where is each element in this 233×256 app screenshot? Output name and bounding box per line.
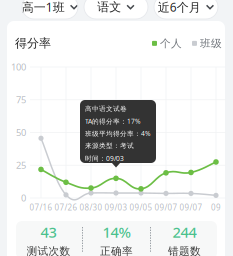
staticText: 08/30 (79, 202, 102, 213)
staticText: 高一1班 (22, 0, 65, 15)
button[interactable]: 244 (151, 222, 218, 256)
staticText: 语文 (97, 0, 121, 14)
staticText: 09/07 (154, 202, 177, 213)
staticText: 09/03 (104, 202, 127, 213)
staticText: 测试次数 (26, 245, 70, 256)
staticText: 班级平均得分率：4% (85, 129, 151, 138)
staticText: 14% (102, 222, 130, 242)
button[interactable]: 14% (83, 222, 150, 256)
staticText: TA的得分率：17% (85, 117, 141, 126)
staticText: 100 (11, 61, 26, 73)
button[interactable]: 43 (15, 222, 82, 256)
staticText: 09/05 (129, 202, 152, 213)
button[interactable]: 语文 (84, 0, 148, 19)
staticText: 近6个月 (158, 0, 201, 15)
staticText: 25 (16, 159, 26, 171)
staticText: 244 (172, 222, 196, 242)
staticText: 个人 (160, 37, 182, 50)
staticText: 07/16 (29, 202, 52, 213)
staticText: 正确率 (100, 245, 133, 256)
staticText: 75 (16, 94, 26, 106)
staticText: 高中语文试卷 (85, 105, 127, 113)
staticText: 09 (211, 202, 221, 213)
staticText: 50 (16, 126, 26, 139)
staticText: 时间：09/03 (85, 154, 124, 163)
button[interactable]: 高一1班 (22, 0, 78, 19)
staticText: 错题数 (168, 245, 201, 256)
staticText: 班级 (200, 37, 222, 50)
staticText: 07/26 (54, 202, 77, 213)
staticText: 43 (40, 222, 56, 242)
button[interactable]: 近6个月 (154, 0, 218, 19)
staticText: 来源类型：考试 (85, 142, 134, 150)
staticText: 09/07 (179, 202, 202, 213)
staticText: 0 (21, 192, 26, 204)
staticText: 得分率 (15, 36, 51, 51)
